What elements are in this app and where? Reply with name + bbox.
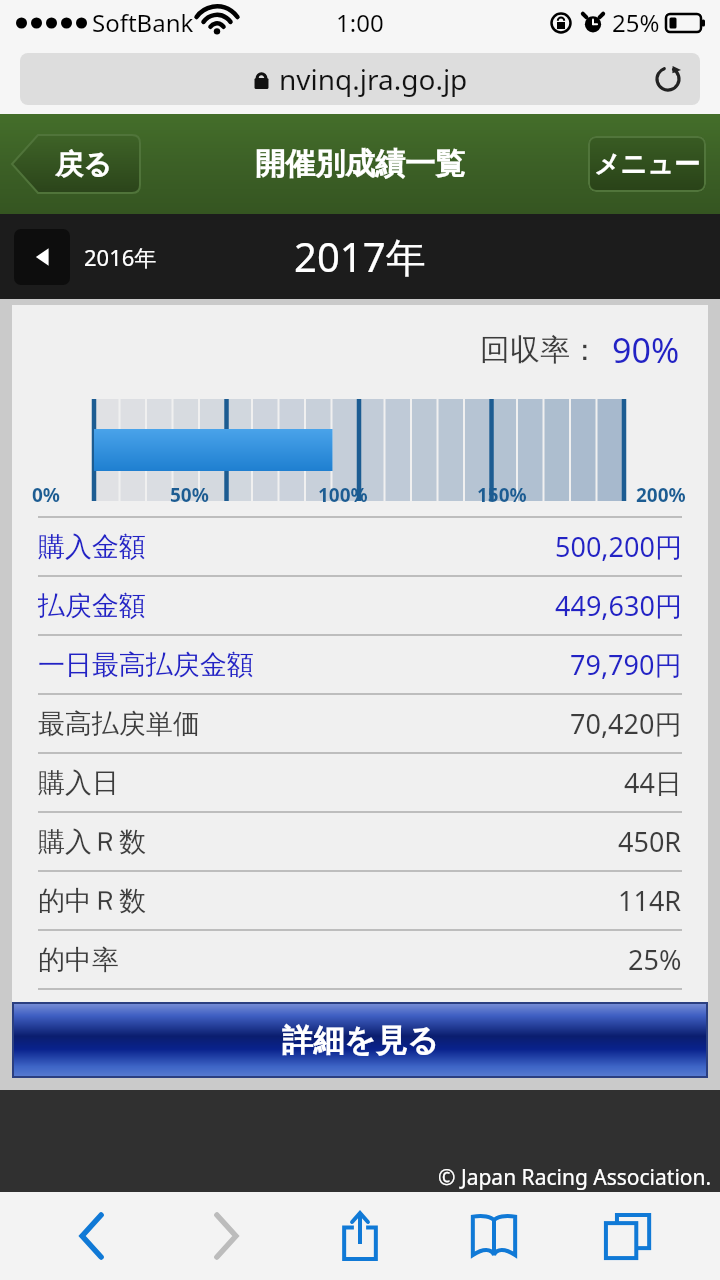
- staticText: 2016年: [84, 242, 157, 272]
- button[interactable]: 最高払戻単価: [38, 695, 682, 752]
- staticText: 2017年: [294, 229, 426, 284]
- button[interactable]: 的中率: [38, 931, 682, 988]
- button[interactable]: nvinq.jra.go.jp: [20, 53, 700, 105]
- button[interactable]: Bookmarks: [452, 1194, 536, 1278]
- staticText: 1:00: [336, 6, 384, 39]
- button[interactable]: Back: [50, 1194, 134, 1278]
- button[interactable]: 詳細を見る: [12, 1002, 708, 1078]
- staticText: 25%: [612, 6, 660, 39]
- staticText: 戻る: [55, 147, 112, 182]
- staticText: SoftBank: [92, 6, 194, 39]
- button[interactable]: メニュー: [588, 136, 706, 192]
- staticText: 最高払戻単価: [38, 707, 200, 741]
- staticText: © Japan Racing Association.: [438, 1163, 712, 1192]
- staticText: nvinq.jra.go.jp: [279, 60, 468, 98]
- button[interactable]: 的中Ｒ数: [38, 872, 682, 929]
- button[interactable]: 払戻金額: [38, 577, 682, 634]
- staticText: 500,200円: [555, 528, 682, 565]
- staticText: 200%: [636, 482, 686, 508]
- button[interactable]: 一日最高払戻金額: [38, 636, 682, 693]
- staticText: 25%: [628, 941, 682, 978]
- button[interactable]: 戻る: [12, 135, 140, 193]
- staticText: 79,790円: [570, 646, 682, 683]
- staticText: メニュー: [594, 148, 700, 181]
- staticText: 開催別成績一覧: [255, 145, 465, 183]
- staticText: 450R: [618, 823, 682, 860]
- staticText: 回収率：: [480, 331, 600, 369]
- staticText: 一日最高払戻金額: [38, 648, 254, 682]
- staticText: 114R: [618, 882, 682, 919]
- button[interactable]: Share: [318, 1194, 402, 1278]
- button[interactable]: Forward: [184, 1194, 268, 1278]
- button[interactable]: 購入金額: [38, 518, 682, 575]
- staticText: 詳細を見る: [282, 1021, 439, 1060]
- staticText: 的中Ｒ数: [38, 884, 146, 918]
- staticText: 0%: [32, 482, 61, 508]
- staticText: 44日: [624, 764, 682, 801]
- button[interactable]: Tabs: [586, 1194, 670, 1278]
- staticText: 449,630円: [555, 587, 682, 624]
- button[interactable]: 購入Ｒ数: [38, 813, 682, 870]
- staticText: 購入金額: [38, 530, 146, 564]
- button[interactable]: Reload: [650, 61, 686, 97]
- staticText: 購入日: [38, 766, 119, 800]
- staticText: 的中率: [38, 943, 119, 977]
- button[interactable]: 購入日: [38, 754, 682, 811]
- staticText: 50%: [170, 482, 209, 508]
- staticText: 購入Ｒ数: [38, 825, 146, 859]
- staticText: 70,420円: [570, 705, 682, 742]
- staticText: 払戻金額: [38, 589, 146, 623]
- staticText: 90%: [612, 327, 680, 373]
- staticText: 150%: [477, 482, 527, 508]
- staticText: 100%: [318, 482, 368, 508]
- button[interactable]: Previous year: [14, 229, 70, 285]
